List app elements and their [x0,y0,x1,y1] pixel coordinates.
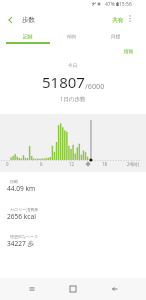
staticText: 44.09 km [7,184,36,193]
button[interactable]: 傾向 [50,28,94,44]
button[interactable]: More options [123,12,136,25]
staticText: 今日 [68,62,78,68]
staticText: 15:56 [119,1,132,8]
button[interactable]: 理想的なペース [0,234,146,258]
staticText: 歩数 [22,16,36,24]
staticText: 51807 [42,72,85,92]
staticText: 1日の歩数 [60,95,86,103]
button[interactable]: 記録 [6,28,50,44]
button[interactable]: Back [1,11,18,28]
staticText: カロリー消費量 [10,207,39,212]
button[interactable]: Home [63,279,83,299]
staticText: 距離 [10,179,18,184]
button[interactable]: Back [105,279,125,299]
staticText: 6 [40,161,43,167]
staticText: 24(時) [127,161,140,167]
staticText: 理想的なペース [10,234,39,239]
staticText: 情報 [124,49,134,55]
staticText: 47% [105,1,115,8]
button[interactable]: カロリー消費量 [0,207,146,231]
staticText: 目標 [111,33,121,39]
staticText: 傾向 [67,33,77,39]
button[interactable]: Recent apps [22,279,42,299]
staticText: 12 [69,161,75,167]
staticText: /6000 [85,81,105,91]
staticText: 共有 [112,16,124,23]
staticText: 記録 [23,33,33,39]
staticText: 0 [6,161,9,167]
staticText: 2656 kcal [7,212,36,221]
button[interactable]: 距離 [0,179,146,203]
button[interactable]: 共有 [107,13,129,26]
staticText: 34227 歩 [7,239,35,248]
button[interactable]: 情報 [112,47,146,57]
button[interactable]: 目標 [94,28,138,44]
staticText: 18 [102,161,108,167]
